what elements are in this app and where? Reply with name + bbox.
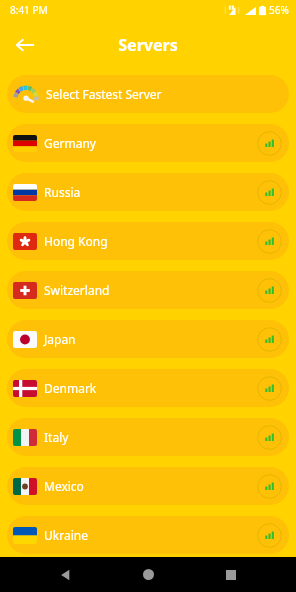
staticText: Denmark <box>44 380 97 396</box>
staticText: Select Fastest Server <box>46 86 162 102</box>
button[interactable]: Mexico <box>7 467 289 505</box>
button[interactable]: Home <box>130 557 166 592</box>
staticText: 56% <box>269 3 289 17</box>
staticText: 8:41 PM <box>10 3 48 17</box>
button[interactable]: Ukraine <box>7 516 289 554</box>
staticText: Switzerland <box>44 282 110 298</box>
staticText: Ukraine <box>44 527 88 543</box>
staticText: Servers <box>118 34 178 56</box>
button[interactable]: Hong Kong <box>7 222 289 260</box>
button[interactable]: Switzerland <box>7 271 289 309</box>
button[interactable]: Denmark <box>7 369 289 407</box>
staticText: Japan <box>44 331 76 347</box>
staticText: Russia <box>44 184 81 200</box>
button[interactable]: Russia <box>7 173 289 211</box>
button[interactable]: Recents <box>213 557 249 592</box>
button[interactable]: Japan <box>7 320 289 358</box>
staticText: Italy <box>44 429 69 445</box>
button[interactable]: Germany <box>7 124 289 162</box>
button[interactable]: Italy <box>7 418 289 456</box>
button[interactable]: Select Fastest Server <box>7 75 289 113</box>
button[interactable]: Back <box>6 26 44 64</box>
staticText: Mexico <box>44 478 84 494</box>
button[interactable]: Back <box>47 557 83 592</box>
staticText: Germany <box>44 135 96 151</box>
staticText: Hong Kong <box>44 233 108 249</box>
